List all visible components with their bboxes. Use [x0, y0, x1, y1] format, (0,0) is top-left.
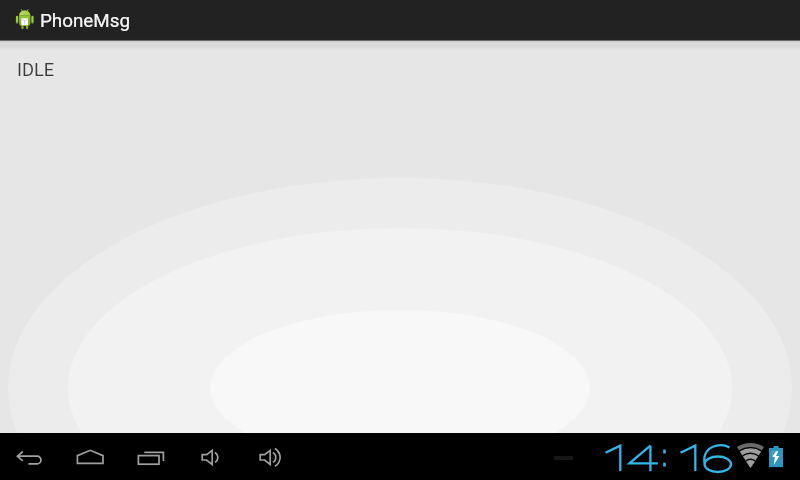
button[interactable]: Back: [1, 433, 59, 480]
button[interactable]: Home: [61, 433, 119, 480]
staticText: IDLE: [17, 59, 55, 80]
staticText: PhoneMsg: [40, 10, 130, 32]
button[interactable]: Volume down: [181, 433, 239, 480]
button[interactable]: Volume up: [241, 433, 299, 480]
button[interactable]: Recent apps: [121, 433, 179, 480]
